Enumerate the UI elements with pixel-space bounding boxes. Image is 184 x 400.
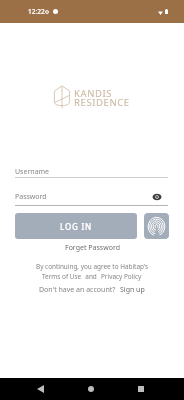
button[interactable]: Show password: [149, 189, 165, 205]
staticText: 12:22: [28, 7, 45, 16]
staticText: LOG IN: [60, 221, 93, 232]
staticText: Password: [15, 192, 47, 202]
staticText: Don't have an account?: [39, 285, 116, 295]
button[interactable]: Sign up: [120, 285, 145, 295]
button[interactable]: Fingerprint login: [144, 213, 169, 239]
staticText: and: [82, 272, 101, 281]
button[interactable]: Home: [79, 378, 103, 400]
button[interactable]: Recents: [129, 378, 153, 400]
button[interactable]: Terms of Use: [42, 272, 82, 281]
button[interactable]: Back: [28, 378, 52, 400]
staticText: KANDIS RESIDENCE: [74, 87, 130, 108]
button[interactable]: Privacy Policy: [101, 272, 142, 281]
staticText: By continuing, you agree to Habitap's: [36, 262, 149, 271]
button[interactable]: Forget Password: [61, 242, 124, 254]
staticText: Username: [15, 167, 50, 177]
button[interactable]: LOG IN: [15, 213, 137, 239]
